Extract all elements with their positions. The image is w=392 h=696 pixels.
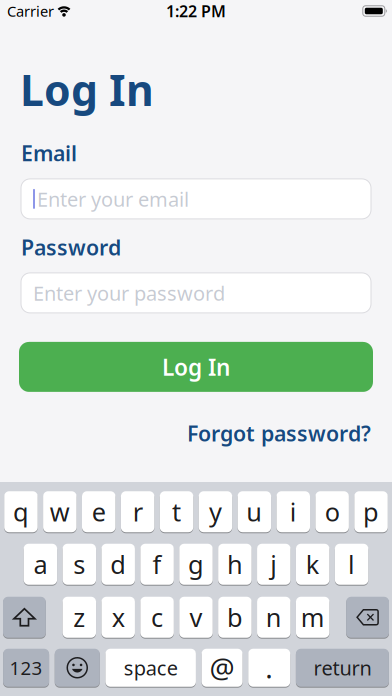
staticText: Carrier [7, 1, 54, 21]
staticText: y [209, 495, 222, 528]
button[interactable]: e [82, 491, 115, 532]
staticText: h [227, 547, 243, 581]
staticText: v [189, 600, 202, 634]
button[interactable]: w [43, 491, 77, 532]
button[interactable]: v [179, 597, 213, 638]
button[interactable]: f [140, 544, 174, 585]
button[interactable]: d [101, 544, 135, 585]
staticText: e [92, 495, 106, 528]
staticText: f [153, 547, 162, 581]
staticText: i [290, 495, 297, 528]
button[interactable]: j [257, 544, 291, 585]
button[interactable]: a [24, 544, 57, 585]
button[interactable]: l [335, 544, 368, 585]
button[interactable]: Enter your password [21, 273, 371, 313]
button[interactable]: 123 [3, 649, 49, 687]
button[interactable]: h [218, 544, 252, 585]
staticText: t [172, 495, 181, 528]
staticText: r [133, 495, 143, 528]
button[interactable]: q [4, 491, 38, 532]
button[interactable]: y [199, 491, 232, 532]
button[interactable]: space [105, 649, 196, 687]
staticText: l [348, 547, 355, 581]
staticText: Password [21, 233, 121, 261]
staticText: b [227, 600, 243, 634]
staticText: Log In [162, 352, 230, 382]
staticText: Forgot password? [187, 419, 371, 447]
button[interactable]: Forgot password? [187, 419, 371, 447]
staticText: z [73, 600, 85, 634]
button[interactable]: @ [202, 649, 243, 687]
staticText: d [110, 547, 126, 581]
staticText: . [265, 649, 273, 686]
button[interactable]: Emoji [55, 649, 100, 687]
staticText: 123 [10, 655, 43, 680]
button[interactable]: Shift [3, 597, 46, 638]
staticText: w [50, 495, 70, 528]
staticText: Log In [20, 61, 154, 118]
staticText: @ [210, 649, 235, 686]
staticText: space [124, 654, 178, 681]
button[interactable]: Delete [346, 597, 389, 638]
staticText: Enter your password [33, 280, 225, 306]
button[interactable]: b [218, 597, 252, 638]
button[interactable]: p [354, 491, 388, 532]
staticText: q [13, 495, 29, 528]
button[interactable]: i [276, 491, 310, 532]
staticText: k [306, 547, 320, 581]
staticText: return [313, 654, 371, 681]
button[interactable]: r [121, 491, 154, 532]
staticText: a [33, 547, 47, 581]
button[interactable]: x [101, 597, 135, 638]
staticText: x [112, 600, 125, 634]
button[interactable]: s [63, 544, 96, 585]
staticText: n [266, 600, 282, 634]
button[interactable]: z [62, 597, 96, 638]
staticText: c [151, 600, 163, 634]
staticText: j [270, 547, 277, 581]
staticText: Enter your email [37, 186, 189, 212]
button[interactable]: return [296, 649, 389, 687]
button[interactable]: u [238, 491, 271, 532]
button[interactable]: k [296, 544, 329, 585]
staticText: u [246, 495, 262, 528]
staticText: s [73, 547, 85, 581]
button[interactable]: c [140, 597, 174, 638]
button[interactable]: . [248, 649, 290, 687]
button[interactable]: g [179, 544, 213, 585]
staticText: 1:22 PM [166, 0, 226, 22]
staticText: p [363, 495, 379, 528]
button[interactable]: o [315, 491, 349, 532]
button[interactable]: n [257, 597, 291, 638]
button[interactable]: t [160, 491, 193, 532]
staticText: o [325, 495, 340, 528]
staticText: m [301, 600, 325, 634]
staticText: g [188, 547, 204, 581]
button[interactable]: Log In [19, 342, 373, 392]
staticText: Email [21, 139, 77, 167]
button[interactable]: m [296, 597, 329, 638]
button[interactable]: Enter your email [21, 179, 371, 219]
